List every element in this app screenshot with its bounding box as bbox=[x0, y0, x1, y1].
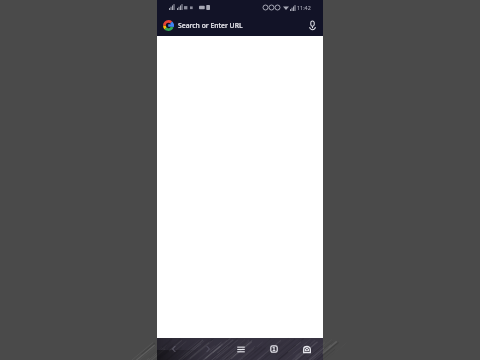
staticText: 11:42 bbox=[297, 4, 311, 11]
button[interactable]: Menu bbox=[224, 338, 257, 360]
button[interactable]: Forward bbox=[191, 338, 224, 360]
button[interactable]: Search or Enter URL bbox=[178, 14, 305, 36]
button[interactable]: Voice search bbox=[305, 18, 319, 32]
button[interactable]: Back bbox=[157, 338, 191, 360]
staticText: Search or Enter URL bbox=[178, 21, 243, 30]
button[interactable]: Home bbox=[290, 338, 323, 360]
button[interactable]: Tabs bbox=[257, 338, 290, 360]
button[interactable]: Google bbox=[163, 20, 174, 31]
